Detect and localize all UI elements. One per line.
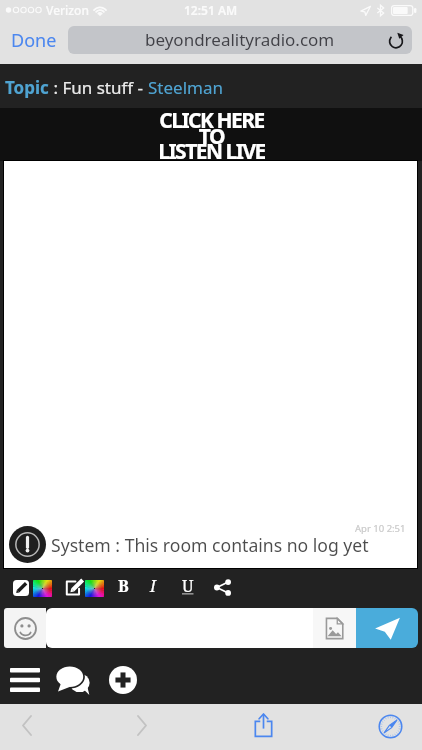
staticText: Done — [11, 28, 57, 53]
button[interactable]: Add — [103, 662, 143, 698]
button[interactable] — [46, 608, 313, 648]
staticText: B — [118, 575, 129, 597]
staticText: U — [182, 575, 194, 597]
staticText: CLICK HERE TO LISTEN LIVE — [158, 106, 265, 159]
button[interactable]: Done — [4, 23, 64, 58]
button[interactable]: Safari — [373, 709, 407, 743]
staticText: Apr 10 2:51 — [355, 522, 406, 535]
button[interactable]: beyondrealityradio.com — [68, 26, 412, 54]
button[interactable]: Reload — [386, 30, 406, 50]
staticText: Steelman — [148, 76, 223, 99]
button[interactable]: Menu — [4, 662, 45, 698]
button[interactable]: Share — [246, 708, 280, 742]
button[interactable]: Forward — [125, 708, 159, 742]
button[interactable]: Send — [356, 608, 418, 648]
button[interactable]: Background colour — [85, 580, 104, 597]
button[interactable]: Back — [10, 708, 44, 742]
staticText: System : This room contains no log yet — [51, 533, 369, 557]
button[interactable]: Background pen — [65, 580, 83, 596]
button[interactable]: Attach image — [313, 608, 356, 648]
button[interactable]: I — [142, 575, 164, 597]
button[interactable]: Text colour — [33, 580, 52, 597]
staticText: Verizon — [46, 2, 89, 18]
button[interactable]: Pen colour — [13, 580, 29, 596]
button[interactable]: Share — [211, 576, 233, 598]
button[interactable]: B — [112, 575, 134, 597]
button[interactable]: CLICK HERE TO LISTEN LIVE — [0, 108, 422, 161]
button[interactable]: Emoji — [4, 608, 46, 648]
staticText: : Fun stuff - — [49, 76, 148, 99]
staticText: Topic — [5, 76, 49, 99]
staticText: 12:51 AM — [184, 2, 238, 18]
button[interactable]: U — [177, 575, 199, 597]
staticText: I — [150, 575, 156, 597]
staticText: beyondrealityradio.com — [145, 28, 335, 51]
button[interactable]: Chats — [52, 661, 94, 699]
